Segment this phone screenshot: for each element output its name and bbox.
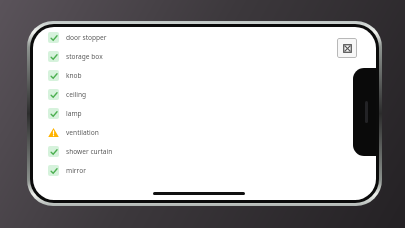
button[interactable]: Close xyxy=(337,38,357,58)
button[interactable]: door stopper xyxy=(33,28,376,47)
button[interactable]: mirror xyxy=(33,161,376,180)
staticText: lamp xyxy=(66,109,82,118)
button[interactable]: shower curtain xyxy=(33,142,376,161)
staticText: storage box xyxy=(66,52,103,61)
button[interactable]: ceiling xyxy=(33,85,376,104)
button[interactable]: knob xyxy=(33,66,376,85)
staticText: knob xyxy=(66,71,82,80)
button[interactable]: storage box xyxy=(33,47,376,66)
staticText: ceiling xyxy=(66,90,87,99)
staticText: shower curtain xyxy=(66,147,113,156)
button[interactable]: ventilation xyxy=(33,123,376,142)
staticText: mirror xyxy=(66,166,86,175)
button[interactable]: lamp xyxy=(33,104,376,123)
staticText: ventilation xyxy=(66,128,99,137)
staticText: door stopper xyxy=(66,33,107,42)
